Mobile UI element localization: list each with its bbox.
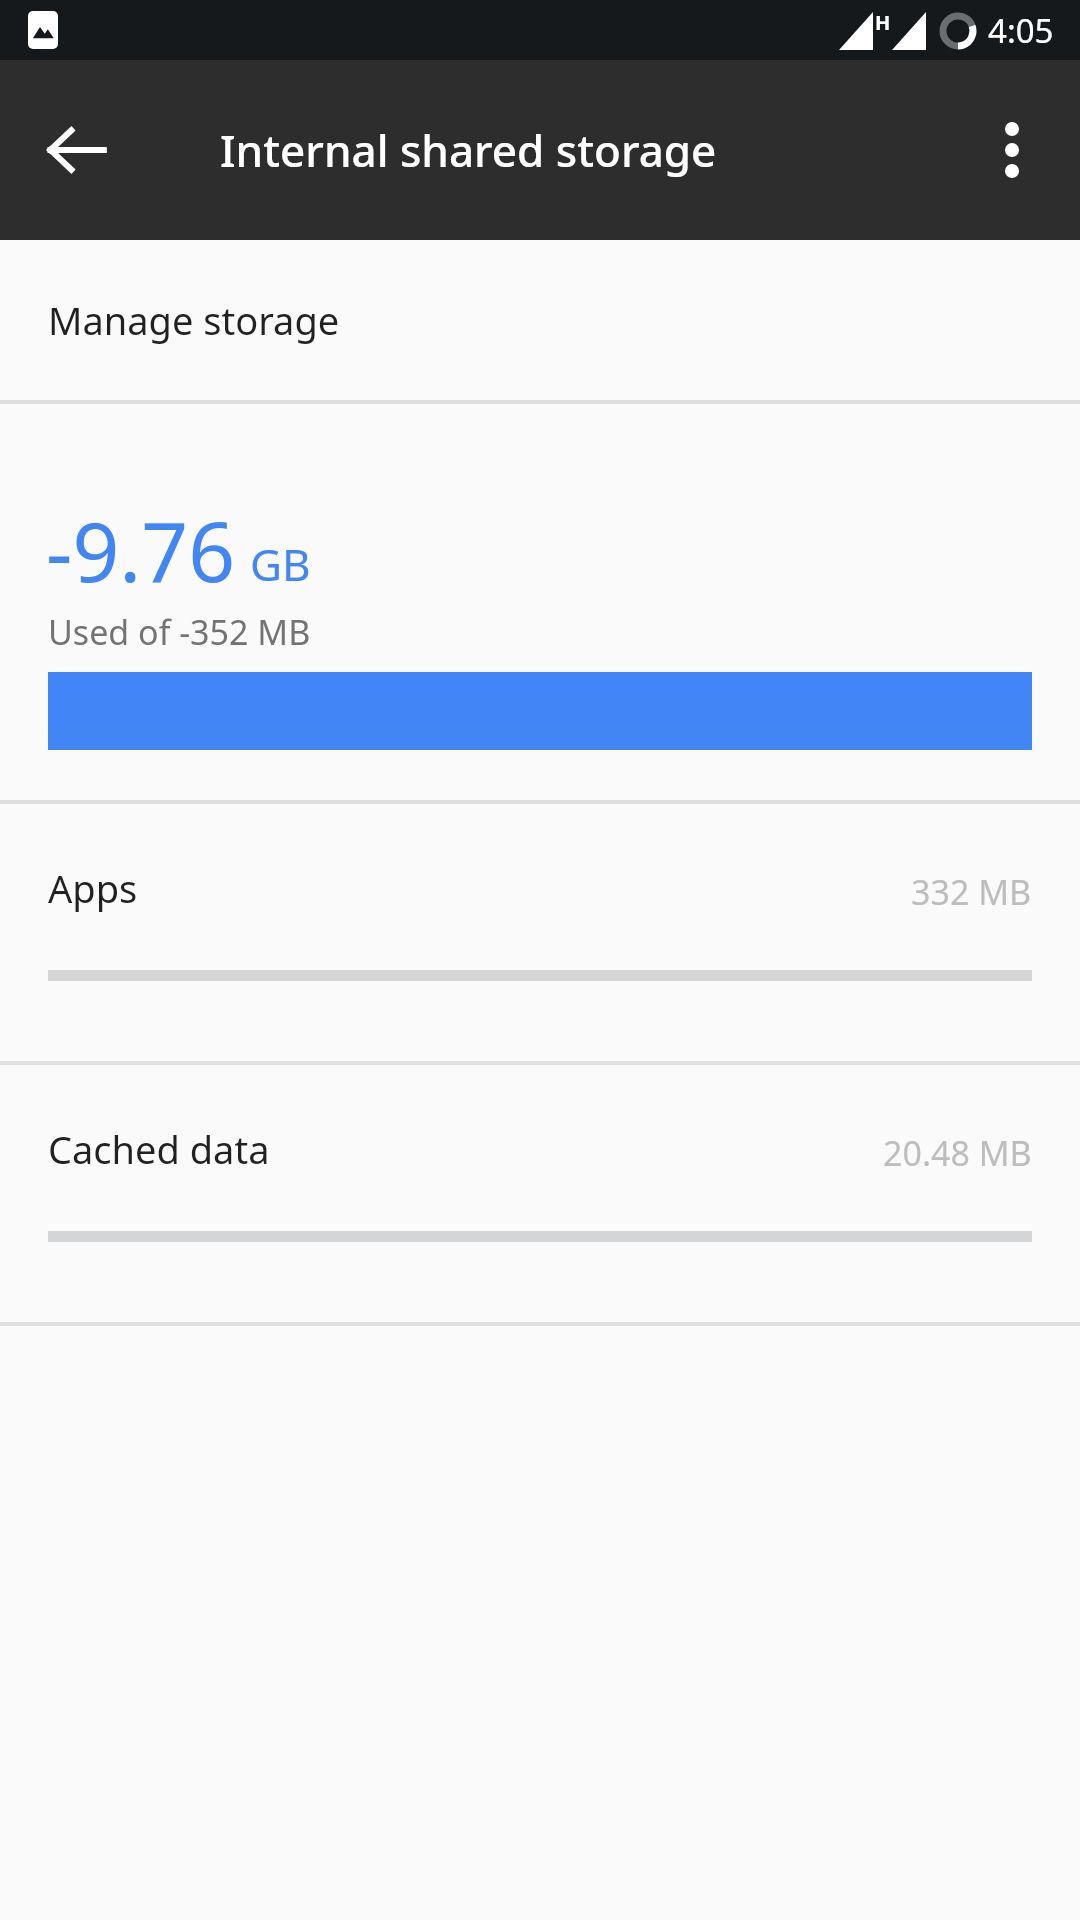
staticText: 4:05 (988, 8, 1054, 53)
button[interactable]: Apps (0, 804, 1080, 1061)
staticText: Used of -352 MB (48, 609, 311, 655)
staticText: 20.48 MB (883, 1130, 1032, 1176)
staticText: Cached data (48, 1123, 270, 1175)
staticText: 332 MB (911, 869, 1032, 915)
button[interactable]: Cached data (0, 1065, 1080, 1322)
staticText: Apps (48, 862, 138, 914)
staticText: -9.76 (46, 494, 236, 606)
button[interactable]: More options (956, 94, 1068, 206)
staticText: Internal shared storage (220, 120, 717, 180)
staticText: Manage storage (48, 294, 340, 346)
button[interactable]: -9.76 (0, 404, 1080, 800)
staticText: GB (250, 534, 311, 594)
button[interactable]: Manage storage (0, 240, 1080, 400)
staticText: H (875, 9, 891, 36)
button[interactable]: Navigate up (20, 94, 132, 206)
